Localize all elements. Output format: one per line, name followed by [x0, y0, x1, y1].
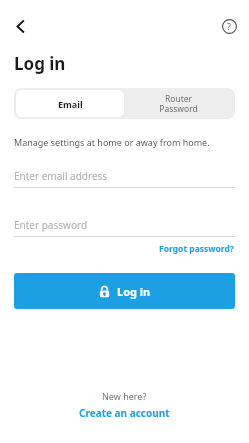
button[interactable]: Forgot password? [157, 241, 236, 257]
staticText: Log in [117, 284, 151, 299]
button[interactable]: Create an account [75, 405, 174, 421]
button[interactable]: Router Password [124, 90, 233, 117]
button[interactable]: Enter password [14, 218, 235, 237]
staticText: Create an account [79, 406, 170, 420]
staticText: Manage settings at home or away from hom… [14, 136, 210, 148]
button[interactable]: Email [16, 90, 124, 117]
staticText: Enter password [14, 218, 88, 232]
staticText: Log in [14, 52, 66, 75]
button[interactable]: Enter email address [14, 169, 235, 188]
button[interactable]: Back [5, 11, 35, 41]
staticText: Enter email address [14, 169, 108, 183]
staticText: Forgot password? [159, 243, 234, 255]
staticText: ? [227, 20, 231, 32]
staticText: Email [58, 98, 83, 110]
staticText: Router Password [159, 93, 198, 114]
staticText: New here? [102, 390, 147, 402]
button[interactable]: Help [215, 12, 243, 40]
button[interactable]: Log in [14, 273, 235, 309]
